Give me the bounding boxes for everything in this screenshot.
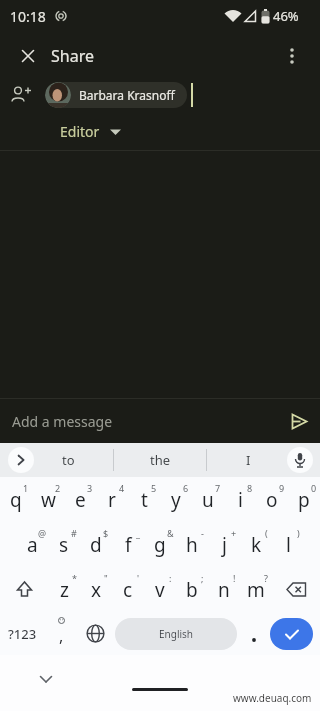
staticText: #	[71, 527, 77, 539]
button[interactable]: v	[144, 567, 176, 612]
staticText: Editor	[60, 122, 100, 141]
staticText: i	[238, 487, 243, 513]
button[interactable]	[272, 567, 320, 612]
staticText: m	[247, 577, 265, 603]
staticText: 1	[23, 482, 29, 494]
staticText: to	[62, 451, 75, 469]
button[interactable]: w	[32, 477, 64, 522]
staticText: 0	[311, 482, 317, 494]
button[interactable]: Add a message	[12, 399, 308, 443]
button[interactable]	[237, 612, 270, 655]
button[interactable]	[287, 447, 313, 473]
button[interactable]: l	[272, 522, 304, 567]
button[interactable]: English	[115, 618, 237, 650]
staticText: y	[171, 487, 181, 513]
button[interactable]: u	[192, 477, 224, 522]
staticText: (	[265, 527, 268, 539]
staticText: z	[60, 577, 69, 603]
button[interactable]: Editor	[60, 113, 320, 150]
staticText: *	[72, 572, 77, 584]
staticText: _	[136, 527, 140, 539]
staticText: &	[167, 527, 174, 539]
button[interactable]: a	[16, 522, 48, 567]
button[interactable]: f	[112, 522, 144, 567]
staticText: Barbara Krasnoff	[79, 87, 175, 103]
staticText: "	[104, 572, 108, 584]
staticText: h	[186, 532, 198, 558]
staticText: :	[169, 572, 172, 584]
staticText: @	[38, 527, 47, 539]
button[interactable]: h	[176, 522, 208, 567]
staticText: '	[137, 572, 140, 584]
staticText: 6	[183, 482, 189, 494]
staticText: 2	[55, 482, 61, 494]
staticText: f	[125, 532, 132, 558]
staticText: ,	[59, 625, 64, 647]
button[interactable]: ,	[44, 612, 78, 655]
button[interactable]: to	[55, 451, 81, 469]
button[interactable]: c	[112, 567, 144, 612]
button[interactable]: j	[208, 522, 240, 567]
staticText: 8	[247, 482, 253, 494]
staticText: the	[150, 451, 171, 469]
staticText: ;	[201, 572, 204, 584]
button[interactable]	[8, 447, 34, 473]
button[interactable]	[14, 42, 42, 70]
staticText: a	[27, 532, 38, 558]
staticText: Add a message	[12, 412, 113, 431]
button[interactable]	[34, 667, 58, 691]
button[interactable]: x	[80, 567, 112, 612]
staticText: e	[75, 487, 86, 513]
staticText: v	[155, 577, 165, 603]
button[interactable]: m	[240, 567, 272, 612]
button[interactable]: z	[48, 567, 80, 612]
staticText: )	[297, 527, 300, 539]
staticText: 3	[87, 482, 93, 494]
button[interactable]	[278, 42, 306, 70]
button[interactable]	[78, 612, 112, 655]
button[interactable]: y	[160, 477, 192, 522]
staticText: p	[298, 487, 310, 513]
staticText: Share	[51, 45, 94, 67]
button[interactable]: ?123	[0, 612, 44, 655]
button[interactable]: b	[176, 567, 208, 612]
staticText: ?123	[8, 625, 37, 643]
staticText: !	[233, 572, 236, 584]
button[interactable]: g	[144, 522, 176, 567]
staticText: 4	[119, 482, 125, 494]
button[interactable]: o	[256, 477, 288, 522]
button[interactable]: d	[80, 522, 112, 567]
button[interactable]: p	[288, 477, 320, 522]
button[interactable]: n	[208, 567, 240, 612]
staticText: o	[266, 487, 278, 513]
staticText: b	[186, 577, 198, 603]
staticText: w	[41, 487, 56, 513]
staticText: 5	[151, 482, 157, 494]
staticText: g	[154, 532, 166, 558]
button[interactable]: r	[96, 477, 128, 522]
staticText: 9	[279, 482, 285, 494]
staticText: x	[91, 577, 102, 603]
button[interactable]: s	[48, 522, 80, 567]
button[interactable]: k	[240, 522, 272, 567]
button[interactable]: I	[240, 451, 256, 469]
staticText: ?	[264, 572, 268, 584]
staticText: c	[123, 577, 133, 603]
staticText: +	[231, 527, 237, 539]
button[interactable]	[0, 567, 48, 612]
button[interactable]: e	[64, 477, 96, 522]
staticText: I	[246, 451, 251, 469]
staticText: j	[222, 532, 227, 558]
button[interactable]: t	[128, 477, 160, 522]
staticText: $	[103, 527, 109, 539]
button[interactable]: the	[146, 451, 174, 469]
button[interactable]: q	[0, 477, 32, 522]
button[interactable]: Barbara Krasnoff	[45, 82, 175, 108]
staticText: q	[10, 487, 22, 513]
staticText: 10:18	[10, 7, 46, 26]
staticText: 7	[215, 482, 221, 494]
button[interactable]	[270, 618, 313, 650]
button[interactable]: i	[224, 477, 256, 522]
staticText: l	[286, 532, 291, 558]
staticText: d	[90, 532, 102, 558]
